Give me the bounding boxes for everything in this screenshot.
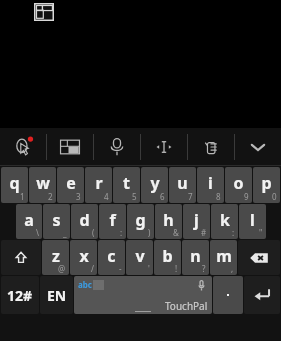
staticText: b	[162, 245, 173, 267]
button[interactable]: y	[141, 167, 168, 203]
staticText: n	[190, 245, 201, 267]
staticText: :	[120, 227, 123, 238]
button[interactable]: u	[169, 167, 196, 203]
button[interactable]: Backspace	[238, 240, 280, 275]
button[interactable]: q	[1, 167, 28, 203]
staticText: p	[261, 172, 272, 194]
button[interactable]: m	[210, 240, 237, 275]
staticText: abc	[78, 279, 92, 290]
button[interactable]: k	[211, 204, 238, 239]
staticText: 2	[48, 191, 53, 202]
staticText: 0	[272, 191, 277, 202]
button[interactable]: o	[225, 167, 252, 203]
staticText: 1	[20, 191, 25, 202]
staticText: 3	[76, 191, 81, 202]
button[interactable]: Voice input	[94, 128, 140, 166]
button[interactable]: Handwriting with badge	[0, 128, 46, 166]
staticText: l	[250, 209, 255, 231]
staticText: #	[201, 227, 207, 238]
staticText: e	[66, 172, 76, 194]
button[interactable]: t	[113, 167, 140, 203]
staticText: 8	[216, 191, 221, 202]
staticText: a	[24, 209, 34, 231]
button[interactable]: g	[127, 204, 154, 239]
staticText: u	[177, 172, 188, 194]
button[interactable]: f	[99, 204, 126, 239]
button[interactable]: a	[16, 204, 42, 239]
staticText: \	[36, 227, 39, 238]
staticText: c	[107, 245, 116, 267]
staticText: -	[119, 263, 122, 274]
staticText: 4	[104, 191, 109, 202]
staticText: m	[216, 245, 232, 267]
button[interactable]: p	[253, 167, 280, 203]
button[interactable]: r	[85, 167, 112, 203]
button[interactable]: Period	[213, 276, 243, 314]
button[interactable]: Choose input method EN	[34, 3, 54, 21]
button[interactable]: c	[98, 240, 125, 275]
button[interactable]: Switch language EN	[47, 128, 93, 166]
staticText: 9	[244, 191, 249, 202]
button[interactable]: Move cursor	[141, 128, 187, 166]
staticText: h	[163, 209, 174, 231]
staticText: /	[91, 263, 94, 274]
button[interactable]: Gesture typing	[188, 128, 234, 166]
staticText: ,	[231, 263, 234, 274]
staticText: 12#	[7, 286, 33, 305]
button[interactable]: j	[183, 204, 210, 239]
staticText: ?	[202, 263, 206, 274]
staticText: '	[148, 263, 150, 274]
button[interactable]: l	[239, 204, 266, 239]
button[interactable]: Enter	[244, 276, 280, 314]
staticText: "	[259, 227, 263, 238]
button[interactable]: Shift	[1, 240, 41, 275]
staticText: v	[135, 245, 145, 267]
staticText: :	[232, 227, 235, 238]
staticText: o	[233, 172, 244, 194]
staticText: q	[9, 172, 20, 194]
button[interactable]: s	[43, 204, 70, 239]
staticText: _	[63, 227, 67, 238]
button[interactable]: v	[126, 240, 153, 275]
button[interactable]: w	[29, 167, 56, 203]
staticText: @	[58, 263, 66, 274]
staticText: TouchPal	[165, 299, 208, 313]
staticText: x	[79, 245, 89, 267]
staticText: s	[52, 209, 61, 231]
staticText: y	[150, 172, 160, 194]
staticText: i	[208, 172, 213, 194]
button[interactable]: z	[42, 240, 69, 275]
staticText: 7	[188, 191, 193, 202]
staticText: d	[79, 209, 90, 231]
button[interactable]: e	[57, 167, 84, 203]
staticText: w	[36, 172, 50, 194]
button[interactable]: EN	[40, 276, 73, 314]
staticText: f	[109, 209, 116, 231]
button[interactable]: 12#	[1, 276, 39, 314]
staticText: 5	[132, 191, 137, 202]
staticText: j	[194, 209, 199, 231]
button[interactable]: n	[182, 240, 209, 275]
button[interactable]: b	[154, 240, 181, 275]
staticText: k	[220, 209, 230, 231]
staticText: r	[95, 172, 103, 194]
button[interactable]: Hide keyboard	[235, 128, 281, 166]
button[interactable]: h	[155, 204, 182, 239]
staticText: z	[52, 245, 60, 267]
staticText: 6	[160, 191, 165, 202]
staticText: !	[175, 263, 178, 274]
button[interactable]: Space	[74, 276, 212, 314]
button[interactable]: d	[71, 204, 98, 239]
staticText: (	[92, 227, 95, 238]
staticText: g	[135, 209, 146, 231]
staticText: &	[173, 227, 179, 238]
staticText: )	[148, 227, 151, 238]
button[interactable]: i	[197, 167, 224, 203]
button[interactable]: x	[70, 240, 97, 275]
staticText: EN	[47, 286, 67, 305]
staticText: t	[123, 172, 130, 194]
